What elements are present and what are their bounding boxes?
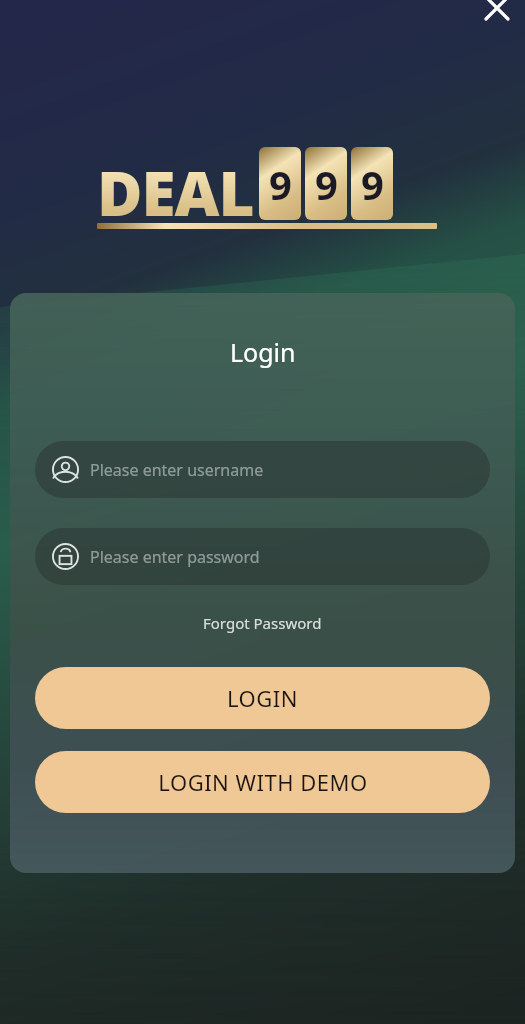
button[interactable]: Please enter username	[35, 441, 490, 498]
button[interactable]: LOGIN	[35, 667, 490, 729]
button[interactable]: Forgot Password	[193, 609, 332, 637]
staticText: 9	[269, 157, 292, 211]
staticText: Please enter password	[90, 546, 260, 568]
staticText: Please enter username	[90, 459, 264, 481]
button[interactable]: Close	[475, 0, 519, 30]
staticText: Forgot Password	[203, 613, 322, 633]
staticText: 9	[361, 157, 384, 211]
staticText: LOGIN WITH DEMO	[158, 767, 368, 797]
staticText: 9	[315, 157, 338, 211]
button[interactable]: Please enter password	[35, 528, 490, 585]
staticText: Login	[230, 335, 296, 369]
button[interactable]: LOGIN WITH DEMO	[35, 751, 490, 813]
staticText: DEAL	[97, 150, 254, 220]
staticText: LOGIN	[227, 683, 298, 713]
